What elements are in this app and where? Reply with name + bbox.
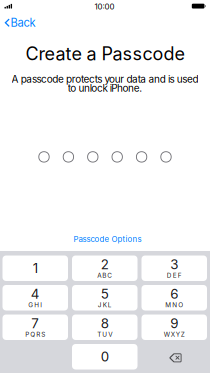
staticText: 1 — [33, 260, 38, 276]
staticText: 3 — [170, 256, 178, 272]
staticText: WXYZ — [164, 331, 185, 338]
button[interactable]: 8 — [72, 314, 137, 340]
button[interactable]: 0 — [72, 344, 137, 369]
staticText: Passcode Options — [73, 234, 141, 244]
staticText: A passcode protects your data and is use… — [11, 73, 198, 85]
staticText: MNO — [165, 301, 183, 309]
staticText: Create a Passcode — [25, 43, 184, 64]
button[interactable]: 7 — [2, 314, 68, 340]
staticText: 6 — [170, 286, 178, 302]
staticText: GHI — [28, 301, 42, 309]
staticText: TUV — [97, 331, 112, 338]
button[interactable]: 9 — [141, 314, 207, 340]
staticText: 10:00 — [94, 2, 114, 12]
staticText: 4 — [31, 286, 40, 302]
staticText: 5 — [101, 286, 109, 302]
staticText: 9 — [170, 315, 178, 331]
button[interactable]: Passcode Options — [61, 229, 153, 249]
button[interactable]: 6 — [141, 285, 207, 310]
staticText: DEF — [167, 272, 182, 279]
staticText: Back — [10, 16, 35, 30]
staticText: ABC — [97, 272, 112, 279]
staticText: 0 — [101, 349, 109, 365]
staticText: 2 — [101, 256, 109, 272]
button[interactable]: 5 — [72, 285, 137, 310]
staticText: 8 — [101, 315, 109, 331]
button[interactable]: 1 — [2, 255, 68, 281]
button[interactable]: Back — [0, 12, 43, 34]
button[interactable]: Delete — [141, 344, 207, 369]
button[interactable]: 4 — [2, 285, 68, 310]
staticText: to unlock iPhone. — [68, 82, 142, 94]
staticText: JKL — [98, 301, 112, 309]
staticText: PQRS — [25, 331, 45, 338]
staticText: 7 — [31, 315, 39, 331]
button[interactable]: 3 — [141, 255, 207, 281]
button[interactable]: 2 — [72, 255, 137, 281]
